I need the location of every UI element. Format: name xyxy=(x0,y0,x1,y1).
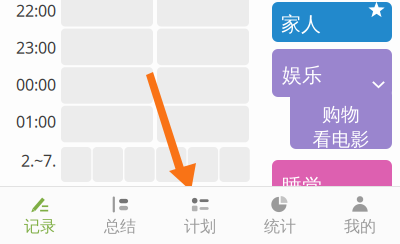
staticText: 00:00 xyxy=(16,74,56,95)
staticText: 总结 xyxy=(104,217,136,236)
staticText: 睡觉 xyxy=(282,174,322,199)
button[interactable]: 记录 xyxy=(0,186,80,244)
staticText: 购物 xyxy=(322,103,360,126)
button[interactable]: 睡觉 xyxy=(272,160,392,200)
button[interactable]: 我的 xyxy=(320,186,400,244)
button[interactable]: 计划 xyxy=(160,186,240,244)
staticText: 统计 xyxy=(264,217,296,236)
staticText: 看电影 xyxy=(312,128,369,151)
staticText: 23:00 xyxy=(16,37,56,58)
staticText: 01:00 xyxy=(16,111,56,132)
button[interactable]: 统计 xyxy=(240,186,320,244)
staticText: 娱乐 xyxy=(282,63,322,88)
button[interactable]: 家人 xyxy=(272,2,392,42)
button[interactable]: 总结 xyxy=(80,186,160,244)
staticText: 2.~7. xyxy=(21,150,56,171)
staticText: 我的 xyxy=(344,217,376,236)
staticText: 家人 xyxy=(281,12,321,37)
staticText: 计划 xyxy=(184,217,216,236)
button[interactable]: 娱乐 xyxy=(272,49,392,149)
staticText: 记录 xyxy=(24,217,56,236)
staticText: 22:00 xyxy=(16,0,56,21)
